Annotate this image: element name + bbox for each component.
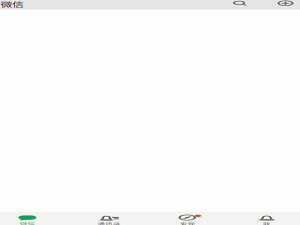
- staticText: 微信: [1, 4, 31, 26]
